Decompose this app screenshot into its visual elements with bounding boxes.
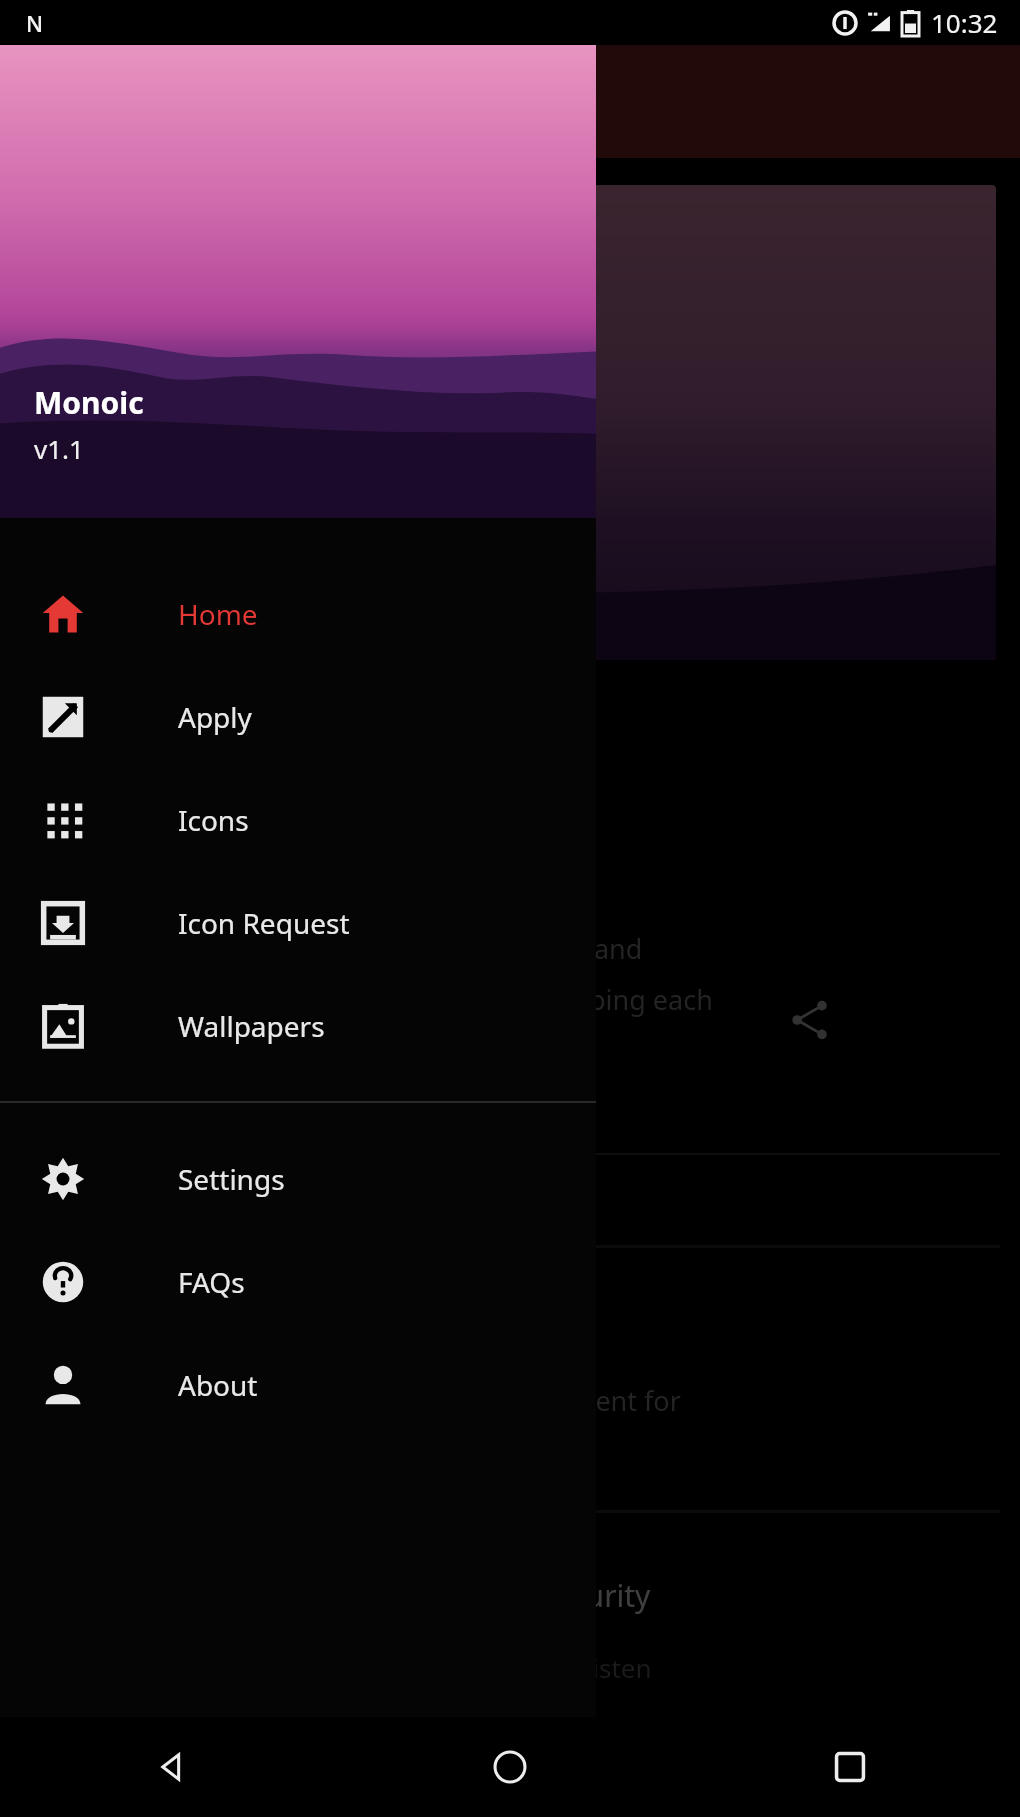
staticText: N xyxy=(26,8,44,38)
button[interactable]: Icon Request xyxy=(0,871,596,974)
button[interactable]: Icons xyxy=(0,768,596,871)
staticText: Settings xyxy=(178,1160,285,1198)
staticText: Icons xyxy=(178,801,249,839)
button[interactable]: FAQs xyxy=(0,1230,596,1333)
button[interactable]: Back xyxy=(135,1732,205,1802)
staticText: Wallpapers xyxy=(178,1007,325,1045)
button[interactable]: Apply xyxy=(0,665,596,768)
button[interactable]: Home xyxy=(475,1732,545,1802)
staticText: Home xyxy=(178,595,258,633)
staticText: Apply xyxy=(178,698,252,736)
button[interactable]: About xyxy=(0,1333,596,1436)
staticText: development for xyxy=(470,1382,681,1419)
button[interactable]: Settings xyxy=(0,1127,596,1230)
button[interactable]: Share xyxy=(780,990,840,1050)
staticText: FAQs xyxy=(178,1263,245,1301)
staticText: Icon Request xyxy=(178,904,350,942)
button[interactable]: Recent apps xyxy=(815,1732,885,1802)
staticText: About xyxy=(178,1366,258,1404)
staticText: 3 minute listen xyxy=(470,1650,652,1685)
staticText: Monoic xyxy=(34,382,144,423)
button[interactable]: Wallpapers xyxy=(0,974,596,1077)
button[interactable]: Home xyxy=(0,562,596,665)
staticText: 10:32 xyxy=(931,5,998,40)
staticText: folio security xyxy=(470,1575,651,1616)
staticText: designed and xyxy=(470,930,643,967)
staticText: while keeping each xyxy=(470,981,713,1018)
staticText: v1.1 xyxy=(34,431,84,466)
